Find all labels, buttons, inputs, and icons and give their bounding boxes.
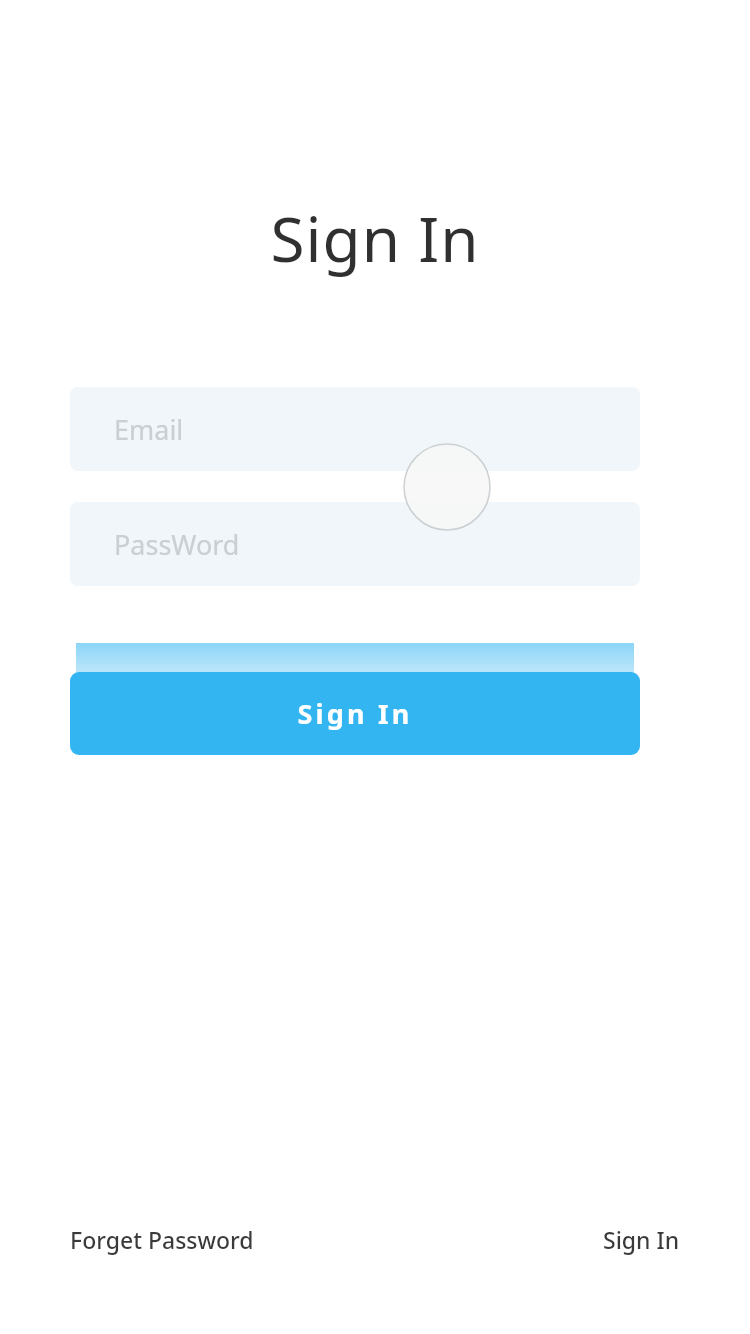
button[interactable]: Sign In (603, 1216, 680, 1262)
button[interactable]: Password input field (70, 502, 640, 586)
button[interactable]: Forget Password (70, 1216, 254, 1262)
staticText: Forget Password (70, 1224, 254, 1255)
staticText: Sign In (603, 1224, 680, 1255)
button[interactable]: Email input field (70, 387, 640, 471)
button[interactable]: Sign In (70, 672, 640, 755)
staticText: Email (114, 411, 184, 448)
staticText: Sign In (0, 196, 750, 280)
staticText: Sign In (70, 695, 640, 732)
staticText: PassWord (114, 526, 240, 563)
